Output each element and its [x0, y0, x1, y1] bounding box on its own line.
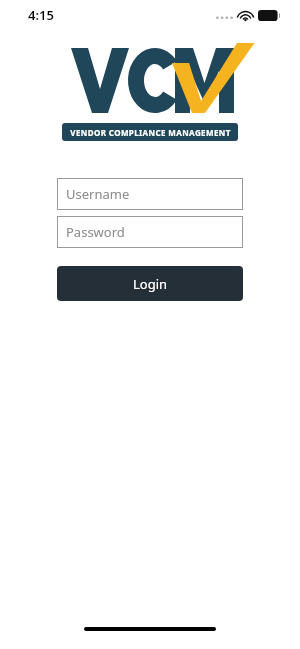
staticText: Login [133, 275, 168, 293]
staticText: 4:15 [28, 6, 54, 24]
button[interactable]: Username [57, 178, 243, 210]
button[interactable]: Password [57, 216, 243, 248]
staticText: Password [66, 223, 125, 241]
staticText: VENDOR COMPLIANCE MANAGEMENT [70, 127, 231, 138]
staticText: Username [66, 185, 130, 203]
button[interactable]: Login [57, 266, 243, 301]
